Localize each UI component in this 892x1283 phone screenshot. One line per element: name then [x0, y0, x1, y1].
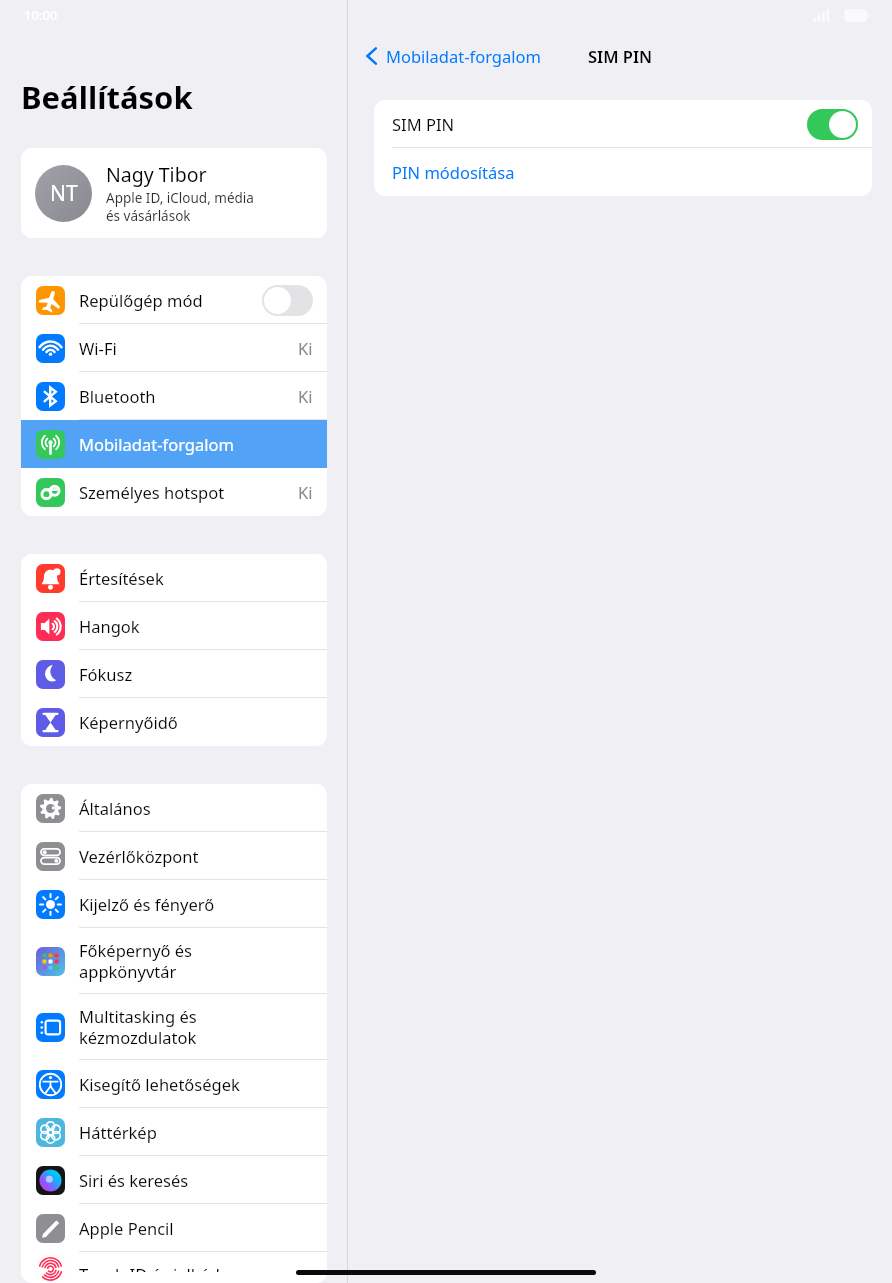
button[interactable]: Toggle — [262, 285, 313, 316]
staticText: Értesítések — [79, 567, 164, 589]
staticText: Mobiladat-forgalom — [79, 433, 234, 455]
button[interactable]: Bluetooth — [21, 372, 327, 420]
button[interactable]: Toggle — [807, 109, 858, 140]
staticText: Multitasking és kézmozdulatok — [79, 1005, 197, 1049]
staticText: Mobiladat-forgalom — [386, 45, 541, 67]
staticText: Általános — [79, 797, 151, 819]
button[interactable]: SIM PIN — [374, 100, 872, 148]
staticText: Kisegítő lehetőségek — [79, 1073, 240, 1095]
staticText: Nagy Tibor — [106, 161, 207, 188]
button[interactable]: Mobiladat-forgalom — [366, 45, 541, 67]
button[interactable]: Repülőgép mód — [21, 276, 327, 324]
staticText: Főképernyő és appkönyvtár — [79, 939, 193, 983]
staticText: Repülőgép mód — [79, 289, 203, 311]
staticText: Fókusz — [79, 663, 133, 685]
button[interactable]: Touch ID és jelkód — [21, 1252, 327, 1283]
button[interactable]: Általános — [21, 784, 327, 832]
staticText: Beállítások — [21, 76, 193, 118]
button[interactable]: Személyes hotspot — [21, 468, 327, 516]
staticText: Apple ID, iCloud, média és vásárlások — [106, 189, 254, 225]
button[interactable]: Hangok — [21, 602, 327, 650]
staticText: Bluetooth — [79, 385, 156, 407]
staticText: Kijelző és fényerő — [79, 893, 215, 915]
staticText: Háttérkép — [79, 1121, 157, 1143]
button[interactable]: Fókusz — [21, 650, 327, 698]
button[interactable]: Kisegítő lehetőségek — [21, 1060, 327, 1108]
staticText: PIN módosítása — [392, 161, 515, 183]
staticText: Ki — [298, 385, 313, 407]
staticText: Ki — [298, 337, 313, 359]
staticText: Személyes hotspot — [79, 481, 225, 503]
button[interactable]: Vezérlőközpont — [21, 832, 327, 880]
staticText: Wi-Fi — [79, 337, 117, 359]
button[interactable]: Siri és keresés — [21, 1156, 327, 1204]
staticText: Vezérlőközpont — [79, 845, 199, 867]
button[interactable]: Apple Pencil — [21, 1204, 327, 1252]
staticText: SIM PIN — [588, 45, 653, 67]
staticText: Touch ID és jelkód — [79, 1263, 220, 1272]
staticText: SIM PIN — [392, 113, 807, 135]
button[interactable]: PIN módosítása — [374, 148, 872, 196]
button[interactable]: Képernyőidő — [21, 698, 327, 746]
button[interactable]: NT — [21, 148, 327, 238]
staticText: Ki — [298, 481, 313, 503]
staticText: Hangok — [79, 615, 140, 637]
button[interactable]: Wi-Fi — [21, 324, 327, 372]
staticText: Siri és keresés — [79, 1169, 189, 1191]
button[interactable]: Kijelző és fényerő — [21, 880, 327, 928]
button[interactable]: Mobiladat-forgalom — [21, 420, 327, 468]
staticText: NT — [50, 179, 78, 208]
staticText: Képernyőidő — [79, 711, 178, 733]
staticText: Apple Pencil — [79, 1217, 174, 1239]
button[interactable]: Értesítések — [21, 554, 327, 602]
button[interactable]: Multitasking és kézmozdulatok — [21, 994, 327, 1060]
staticText: 10:00 — [24, 6, 58, 24]
button[interactable]: Háttérkép — [21, 1108, 327, 1156]
button[interactable]: Főképernyő és appkönyvtár — [21, 928, 327, 994]
